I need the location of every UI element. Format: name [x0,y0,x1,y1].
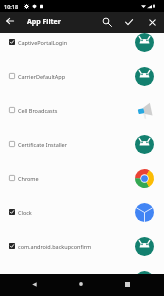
button[interactable]: CarrierDefaultApp [0,59,164,93]
staticText: Clock [18,209,128,216]
button[interactable]: Cell Broadcasts [0,93,164,127]
staticText: Chrome [18,175,128,182]
button[interactable]: Clock [0,195,164,229]
button[interactable]: Chrome [0,161,164,195]
staticText: CaptivePortalLogin [18,39,128,46]
button[interactable]: CaptivePortalLogin [0,33,164,59]
button[interactable]: com.android.bluetooth [0,263,164,274]
staticText: com.android.backupconfirm [18,243,128,250]
button[interactable]: com.android.backupconfirm [0,229,164,263]
staticText: Certificate Installer [18,141,128,148]
button[interactable]: Back [27,277,41,291]
staticText: CarrierDefaultApp [18,73,128,80]
button[interactable]: Confirm [120,13,138,31]
button[interactable]: Back [1,12,18,29]
button[interactable]: Search [98,13,116,31]
button[interactable]: Close [143,13,161,31]
button[interactable]: Recents [120,277,134,291]
button[interactable]: Certificate Installer [0,127,164,161]
staticText: 10:18 [4,3,19,10]
staticText: Cell Broadcasts [18,107,128,114]
staticText: App Filter [27,17,61,27]
button[interactable]: Home [74,277,88,291]
